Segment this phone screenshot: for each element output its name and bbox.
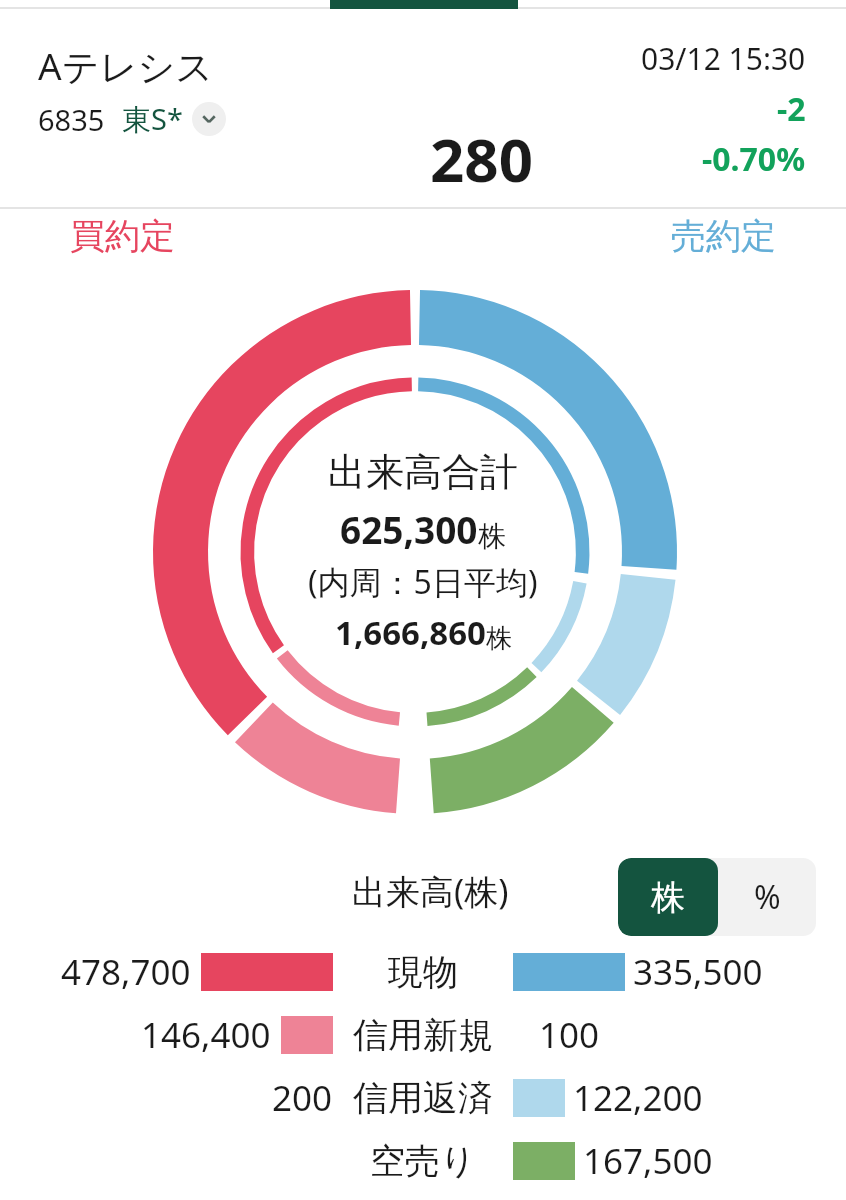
- staticText: Aテレシス: [38, 40, 214, 91]
- staticText: 信用返済: [353, 1076, 493, 1120]
- staticText: 売約定: [671, 214, 776, 258]
- staticText: -0.70%: [702, 137, 806, 181]
- staticText: 280: [430, 118, 533, 200]
- staticText: 出来高(株): [352, 868, 509, 914]
- staticText: 出来高合計: [328, 448, 518, 496]
- staticText: 100: [539, 1011, 600, 1059]
- staticText: 122,200: [573, 1074, 703, 1122]
- staticText: 買約定: [70, 214, 175, 258]
- button[interactable]: %: [718, 858, 816, 936]
- staticText: 信用新規: [353, 1013, 493, 1057]
- button[interactable]: 市場を切り替え: [192, 102, 226, 136]
- staticText: -2: [777, 87, 806, 131]
- staticText: 335,500: [633, 948, 763, 996]
- button[interactable]: 株: [618, 858, 718, 936]
- staticText: 625,300: [340, 504, 478, 554]
- staticText: 6835: [38, 100, 105, 139]
- staticText: 146,400: [141, 1011, 271, 1059]
- staticText: 空売り: [370, 1139, 476, 1183]
- staticText: 478,700: [61, 948, 191, 996]
- staticText: 東S*: [122, 99, 183, 139]
- staticText: 167,500: [583, 1137, 713, 1185]
- staticText: %: [754, 875, 781, 919]
- staticText: 株: [651, 876, 685, 919]
- staticText: 現物: [388, 950, 458, 994]
- staticText: 株: [478, 519, 506, 554]
- staticText: 1,666,860: [335, 610, 486, 655]
- staticText: (内周：5日平均): [308, 560, 538, 604]
- staticText: 200: [272, 1074, 333, 1122]
- staticText: 03/12 15:30: [641, 38, 806, 79]
- staticText: 株: [486, 622, 512, 655]
